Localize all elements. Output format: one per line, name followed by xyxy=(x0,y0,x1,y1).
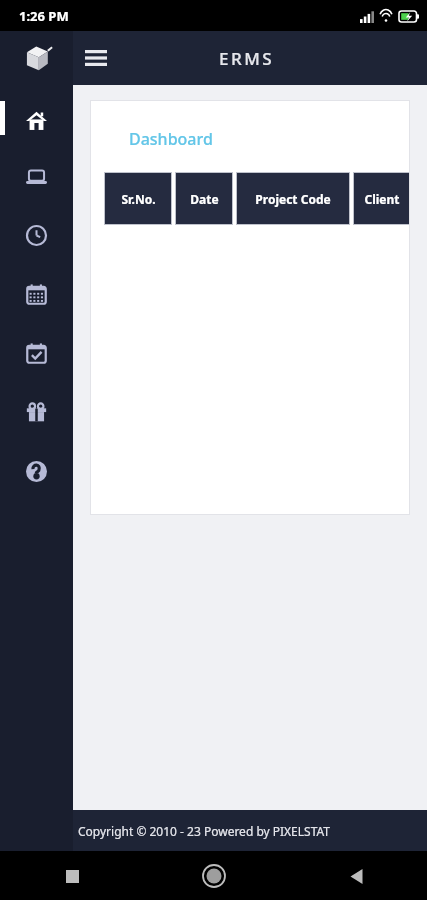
staticText: Sr.No. xyxy=(121,191,156,207)
staticText: Date xyxy=(190,191,219,207)
button[interactable]: Timesheet xyxy=(0,206,73,265)
staticText: Copyright © 2010 - 23 Powered by PIXELST… xyxy=(78,823,331,839)
staticText: Project Code xyxy=(255,191,331,207)
staticText: ERMS xyxy=(219,47,275,70)
staticText: Client xyxy=(364,191,400,207)
button[interactable]: Sr.No. xyxy=(104,172,172,225)
button[interactable]: Home xyxy=(194,856,234,896)
staticText: 1:26 PM xyxy=(19,7,69,25)
button[interactable]: Date xyxy=(175,172,233,225)
staticText: Dashboard xyxy=(129,128,213,150)
button[interactable]: Back xyxy=(336,856,376,896)
button[interactable]: Home xyxy=(0,85,73,147)
button[interactable]: Projects xyxy=(0,147,73,206)
button[interactable]: Menu xyxy=(78,40,114,76)
button[interactable]: Help xyxy=(0,442,73,501)
button[interactable]: Rewards xyxy=(0,383,73,442)
button[interactable]: Calendar xyxy=(0,265,73,324)
button[interactable]: Project Code xyxy=(236,172,350,225)
button[interactable]: Client xyxy=(353,172,410,225)
button[interactable]: Recents xyxy=(52,856,92,896)
button[interactable]: Attendance xyxy=(0,324,73,383)
